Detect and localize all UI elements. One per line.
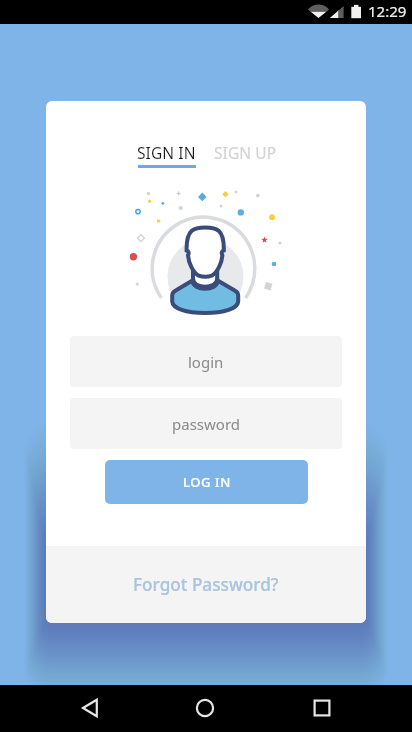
staticText: 12:29 bbox=[368, 1, 407, 21]
button[interactable]: SIGN IN bbox=[137, 142, 196, 168]
staticText: LOG IN bbox=[183, 473, 231, 491]
staticText: login bbox=[188, 352, 224, 372]
staticText: SIGN IN bbox=[137, 142, 196, 163]
staticText: SIGN UP bbox=[214, 142, 277, 163]
button[interactable]: SIGN UP bbox=[214, 142, 277, 163]
staticText: password bbox=[172, 414, 240, 434]
button[interactable]: password bbox=[70, 398, 342, 449]
button[interactable]: login bbox=[70, 336, 342, 387]
button[interactable]: LOG IN bbox=[105, 460, 308, 504]
staticText: Forgot Password? bbox=[133, 573, 279, 596]
button[interactable]: Forgot Password? bbox=[46, 546, 366, 623]
